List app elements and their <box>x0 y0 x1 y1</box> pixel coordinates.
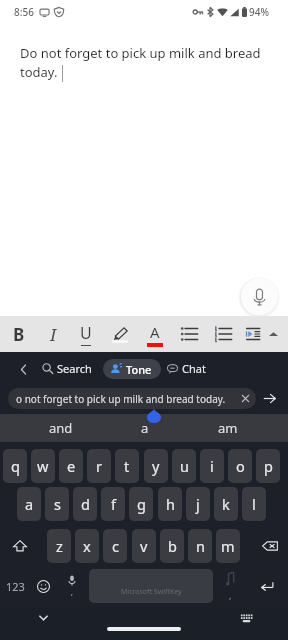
staticText: r <box>96 456 102 476</box>
button[interactable]: Backspace <box>256 529 284 563</box>
staticText: q <box>11 456 20 476</box>
button[interactable]: u <box>172 449 196 483</box>
button[interactable]: m <box>216 529 240 563</box>
staticText: and <box>49 419 73 437</box>
button[interactable]: Highlight <box>104 316 136 352</box>
button[interactable]: g <box>129 487 153 521</box>
button[interactable]: n <box>188 529 212 563</box>
staticText: Tone <box>126 362 152 377</box>
staticText: h <box>166 494 175 514</box>
button[interactable]: h <box>158 487 182 521</box>
button[interactable]: r <box>87 449 111 483</box>
button[interactable]: Back <box>13 359 33 379</box>
button[interactable]: l <box>242 487 266 521</box>
staticText: d <box>81 494 90 514</box>
staticText: 123 <box>6 579 25 594</box>
button[interactable]: p <box>256 449 280 483</box>
button[interactable]: Numbered list <box>207 316 239 352</box>
staticText: y <box>152 456 160 476</box>
button[interactable]: o <box>228 449 252 483</box>
staticText: z <box>56 536 63 556</box>
button[interactable]: w <box>31 449 55 483</box>
button[interactable]: f <box>101 487 125 521</box>
staticText: , <box>229 589 232 601</box>
button[interactable]: Voice input <box>241 278 278 315</box>
button[interactable]: e <box>59 449 83 483</box>
button[interactable]: s <box>45 487 69 521</box>
staticText: c <box>112 536 119 556</box>
button[interactable]: 123 <box>2 569 29 603</box>
staticText: j <box>196 494 200 514</box>
staticText: u <box>180 456 189 476</box>
button[interactable]: Chat <box>164 358 209 379</box>
button[interactable]: Underline <box>70 316 102 352</box>
staticText: f <box>111 494 116 514</box>
staticText: p <box>264 456 273 476</box>
button[interactable]: Bulleted list <box>173 316 205 352</box>
button[interactable]: v <box>132 529 156 563</box>
button[interactable]: Shift <box>6 529 34 563</box>
button[interactable]: a <box>17 487 41 521</box>
staticText: 94% <box>249 5 269 19</box>
staticText: o not forget to pick up milk and bread t… <box>16 392 239 406</box>
staticText: l <box>252 494 256 514</box>
button[interactable]: Enter <box>254 569 280 603</box>
button[interactable]: Emoji <box>31 569 56 603</box>
staticText: i <box>210 456 214 476</box>
staticText: n <box>196 536 205 556</box>
staticText: I <box>50 323 57 346</box>
staticText: a <box>141 419 149 437</box>
button[interactable]: Tone <box>103 359 161 379</box>
button[interactable]: x <box>75 529 99 563</box>
button[interactable]: Hide keyboard <box>33 608 53 628</box>
staticText: a <box>25 494 34 514</box>
button[interactable]: q <box>3 449 27 483</box>
staticText: Microsoft SwiftKey <box>121 587 182 597</box>
button[interactable]: d <box>73 487 97 521</box>
button[interactable]: y <box>144 449 168 483</box>
staticText: B <box>13 323 25 346</box>
button[interactable]: Symbols <box>218 569 242 603</box>
button[interactable]: c <box>103 529 127 563</box>
staticText: U <box>80 322 92 344</box>
staticText: Do not forget to pick up milk and bread … <box>20 44 266 81</box>
staticText: m <box>221 536 235 556</box>
staticText: , <box>71 588 73 598</box>
button[interactable]: Switch keyboard <box>236 608 256 628</box>
staticText: 8:56 <box>14 5 34 19</box>
button[interactable]: Italic <box>37 316 69 352</box>
button[interactable]: Clear <box>239 392 252 405</box>
button[interactable]: Text colour <box>139 316 171 352</box>
staticText: am <box>218 419 238 437</box>
button[interactable]: z <box>47 529 71 563</box>
button[interactable]: a <box>103 414 186 442</box>
button[interactable]: i <box>200 449 224 483</box>
staticText: v <box>140 536 148 556</box>
staticText: A <box>150 322 160 342</box>
button[interactable]: b <box>160 529 184 563</box>
button[interactable]: Bold <box>3 316 35 352</box>
staticText: t <box>124 456 130 476</box>
button[interactable]: Search <box>39 358 95 379</box>
button[interactable]: k <box>214 487 238 521</box>
staticText: e <box>67 456 76 476</box>
button[interactable]: Space <box>89 569 213 603</box>
button[interactable]: Voice typing <box>59 569 84 603</box>
staticText: x <box>83 536 91 556</box>
button[interactable]: t <box>115 449 139 483</box>
button[interactable]: Indent <box>237 316 269 352</box>
button[interactable]: Submit <box>257 388 281 409</box>
staticText: o <box>236 456 245 476</box>
staticText: w <box>37 456 49 476</box>
staticText: Chat <box>182 361 206 376</box>
button[interactable]: Collapse <box>257 316 288 352</box>
button[interactable]: o not forget to pick up milk and bread t… <box>8 388 256 409</box>
staticText: k <box>222 494 230 514</box>
staticText: g <box>137 494 146 514</box>
staticText: s <box>54 494 61 514</box>
button[interactable]: j <box>186 487 210 521</box>
staticText: Search <box>57 361 92 376</box>
button[interactable]: am <box>186 414 269 442</box>
button[interactable]: and <box>19 414 103 442</box>
staticText: b <box>168 536 177 556</box>
